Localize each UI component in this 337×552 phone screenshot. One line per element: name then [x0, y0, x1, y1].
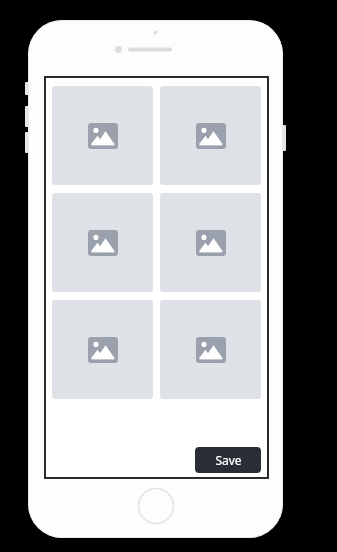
- button[interactable]: Photo slot 5: [52, 300, 153, 399]
- button[interactable]: Photo slot 1: [52, 86, 153, 185]
- button[interactable]: Save: [195, 447, 261, 473]
- button[interactable]: Photo slot 2: [160, 86, 261, 185]
- button[interactable]: Photo slot 3: [52, 193, 153, 292]
- button[interactable]: Photo slot 6: [160, 300, 261, 399]
- staticText: Save: [215, 452, 242, 468]
- button[interactable]: Photo slot 4: [160, 193, 261, 292]
